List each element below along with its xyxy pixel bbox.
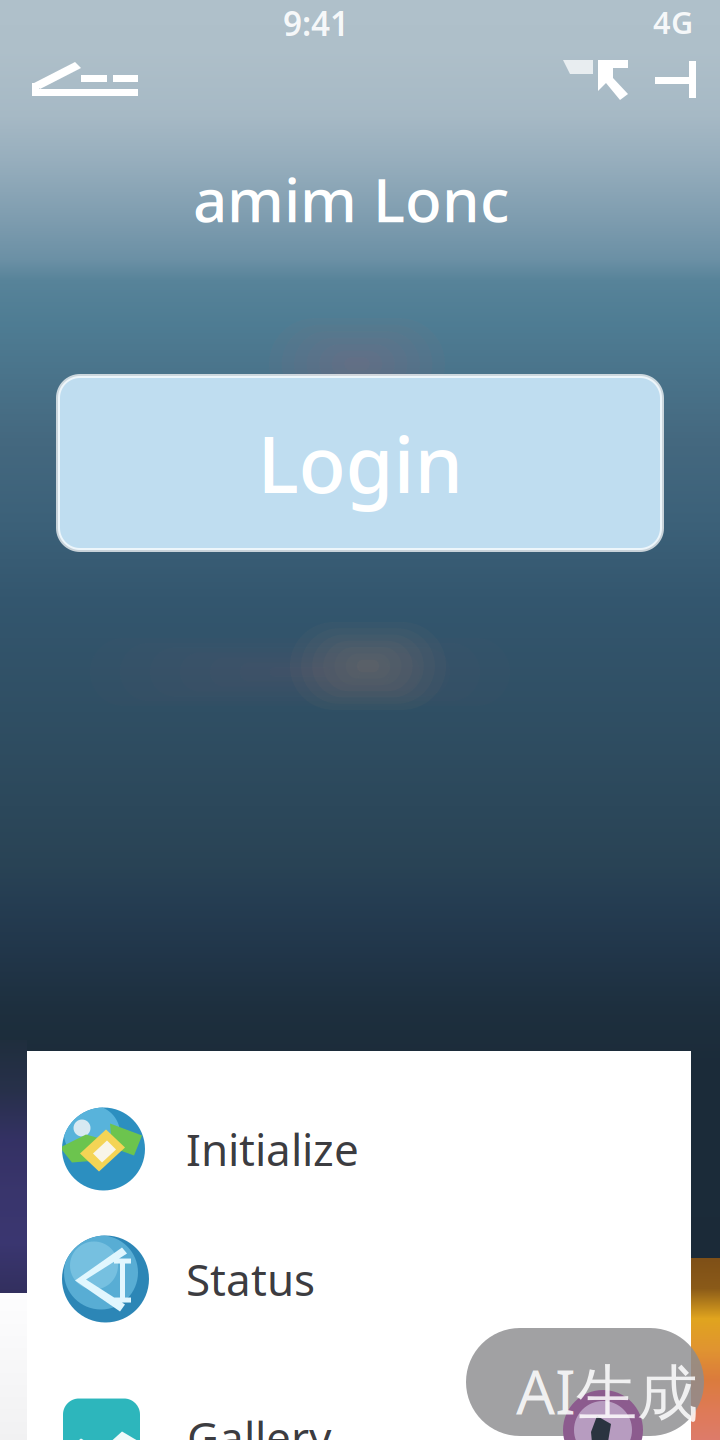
staticText: AI生成 bbox=[516, 1350, 698, 1432]
staticText: amim Lonc bbox=[193, 159, 509, 239]
button[interactable]: Initialize bbox=[62, 1086, 691, 1212]
button[interactable]: Login bbox=[58, 376, 662, 550]
button[interactable]: Share bbox=[563, 60, 629, 102]
button[interactable]: Menu bbox=[655, 61, 696, 98]
button[interactable]: Status bbox=[62, 1216, 691, 1342]
staticText: Login bbox=[257, 412, 462, 514]
staticText: 4G bbox=[653, 2, 693, 42]
button[interactable]: Back bbox=[28, 62, 138, 96]
staticText: Status bbox=[186, 1250, 315, 1308]
staticText: Initialize bbox=[186, 1120, 359, 1178]
staticText: 9:41 bbox=[283, 1, 349, 45]
button[interactable]: Gallery bbox=[63, 1374, 692, 1440]
staticText: Gallery bbox=[187, 1408, 331, 1440]
